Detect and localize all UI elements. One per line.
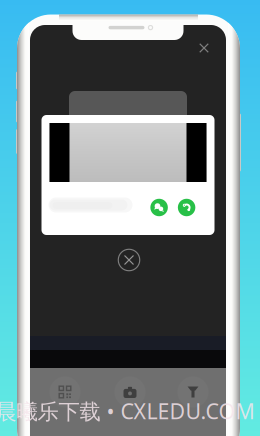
button[interactable]: Share to Moments bbox=[175, 196, 198, 219]
button[interactable]: Flashlight bbox=[171, 370, 215, 414]
button[interactable]: Camera bbox=[108, 370, 152, 414]
button[interactable]: Close bbox=[189, 33, 219, 63]
button[interactable]: Dismiss bbox=[114, 245, 144, 275]
staticText: 晨曦乐下载 • CXLEDU.COM bbox=[0, 397, 254, 425]
button[interactable]: Scan QR code bbox=[43, 370, 87, 414]
button[interactable]: Share to WeChat bbox=[148, 196, 171, 219]
